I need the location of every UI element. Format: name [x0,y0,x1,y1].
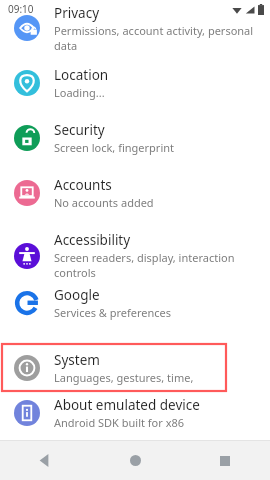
button[interactable]: Privacy [0,18,270,66]
button[interactable]: System [2,344,226,391]
button[interactable]: Accessibility [0,231,270,286]
staticText: Security [54,121,105,139]
button[interactable]: Home [90,441,180,480]
staticText: 09:10 [8,2,34,16]
staticText: Services & preferences [54,305,172,320]
button[interactable]: Security [0,121,270,176]
staticText: Languages, gestures, time, backup [54,370,226,385]
button[interactable]: About emulated device [0,396,270,440]
staticText: No accounts added [54,195,154,210]
button[interactable]: Location [0,66,270,121]
staticText: Location [54,66,109,84]
staticText: Permissions, account activity, personal … [54,23,254,52]
staticText: Loading... [54,85,105,100]
staticText: About emulated device [54,396,200,414]
staticText: System [54,351,100,369]
staticText: Accessibility [54,231,131,249]
button[interactable]: Back [0,441,90,480]
staticText: Screen readers, display, interaction con… [54,250,270,280]
staticText: Accounts [54,176,112,194]
staticText: Privacy [54,4,100,22]
button[interactable]: Google [0,286,270,341]
staticText: Android SDK built for x86 [54,415,185,430]
staticText: Google [54,286,100,304]
button[interactable]: Recent apps [180,441,270,480]
button[interactable]: Accounts [0,176,270,231]
staticText: Screen lock, fingerprint [54,140,175,155]
